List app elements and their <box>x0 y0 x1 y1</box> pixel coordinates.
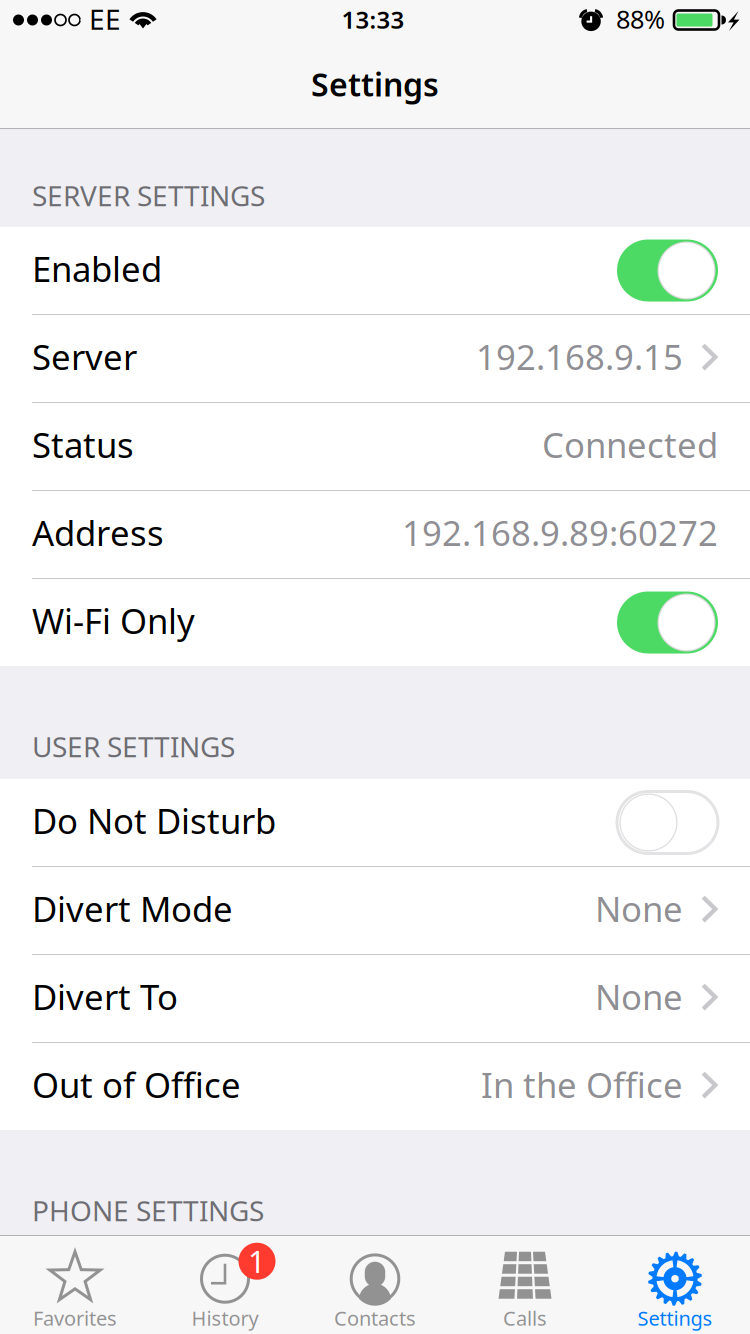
staticText: History <box>191 1305 258 1331</box>
button[interactable]: Calls <box>450 1235 600 1334</box>
staticText: Favorites <box>33 1305 117 1331</box>
button[interactable]: Server <box>0 315 750 402</box>
button[interactable]: Divert Mode <box>0 867 750 954</box>
staticText: 13:33 <box>341 4 404 35</box>
button[interactable]: Out of Office <box>0 1043 750 1130</box>
staticText: Server <box>32 333 137 379</box>
staticText: Settings <box>311 63 439 105</box>
button[interactable]: Status <box>0 403 750 490</box>
staticText: Divert Mode <box>32 885 233 931</box>
button[interactable]: Wi-Fi Only <box>0 579 750 666</box>
staticText: Wi-Fi Only <box>32 597 195 643</box>
staticText: Do Not Disturb <box>32 797 276 843</box>
button[interactable]: Favorites <box>0 1235 150 1334</box>
button[interactable]: Settings <box>600 1235 750 1334</box>
staticText: Out of Office <box>32 1061 241 1107</box>
staticText: USER SETTINGS <box>32 728 235 765</box>
staticText: Divert To <box>32 973 178 1019</box>
staticText: 1 <box>248 1241 266 1282</box>
button[interactable]: Divert To <box>0 955 750 1042</box>
staticText: In the Office <box>481 1061 683 1107</box>
staticText: SERVER SETTINGS <box>32 177 265 214</box>
staticText: Enabled <box>32 245 162 291</box>
staticText: 88% <box>616 2 665 36</box>
staticText: Address <box>32 509 164 555</box>
staticText: Contacts <box>334 1305 416 1331</box>
staticText: None <box>595 973 683 1019</box>
staticText: Calls <box>503 1305 547 1331</box>
button[interactable]: Enabled <box>0 227 750 314</box>
staticText: EE <box>89 0 121 38</box>
button[interactable]: Contacts <box>300 1235 450 1334</box>
staticText: Status <box>32 421 134 467</box>
staticText: PHONE SETTINGS <box>32 1192 264 1229</box>
button[interactable]: Do Not Disturb <box>0 779 750 866</box>
staticText: Connected <box>542 421 718 467</box>
staticText: None <box>595 885 683 931</box>
staticText: 192.168.9.89:60272 <box>402 509 718 555</box>
button[interactable]: Address <box>0 491 750 578</box>
staticText: 192.168.9.15 <box>476 333 683 379</box>
button[interactable]: History <box>150 1235 300 1334</box>
staticText: Settings <box>637 1305 712 1331</box>
